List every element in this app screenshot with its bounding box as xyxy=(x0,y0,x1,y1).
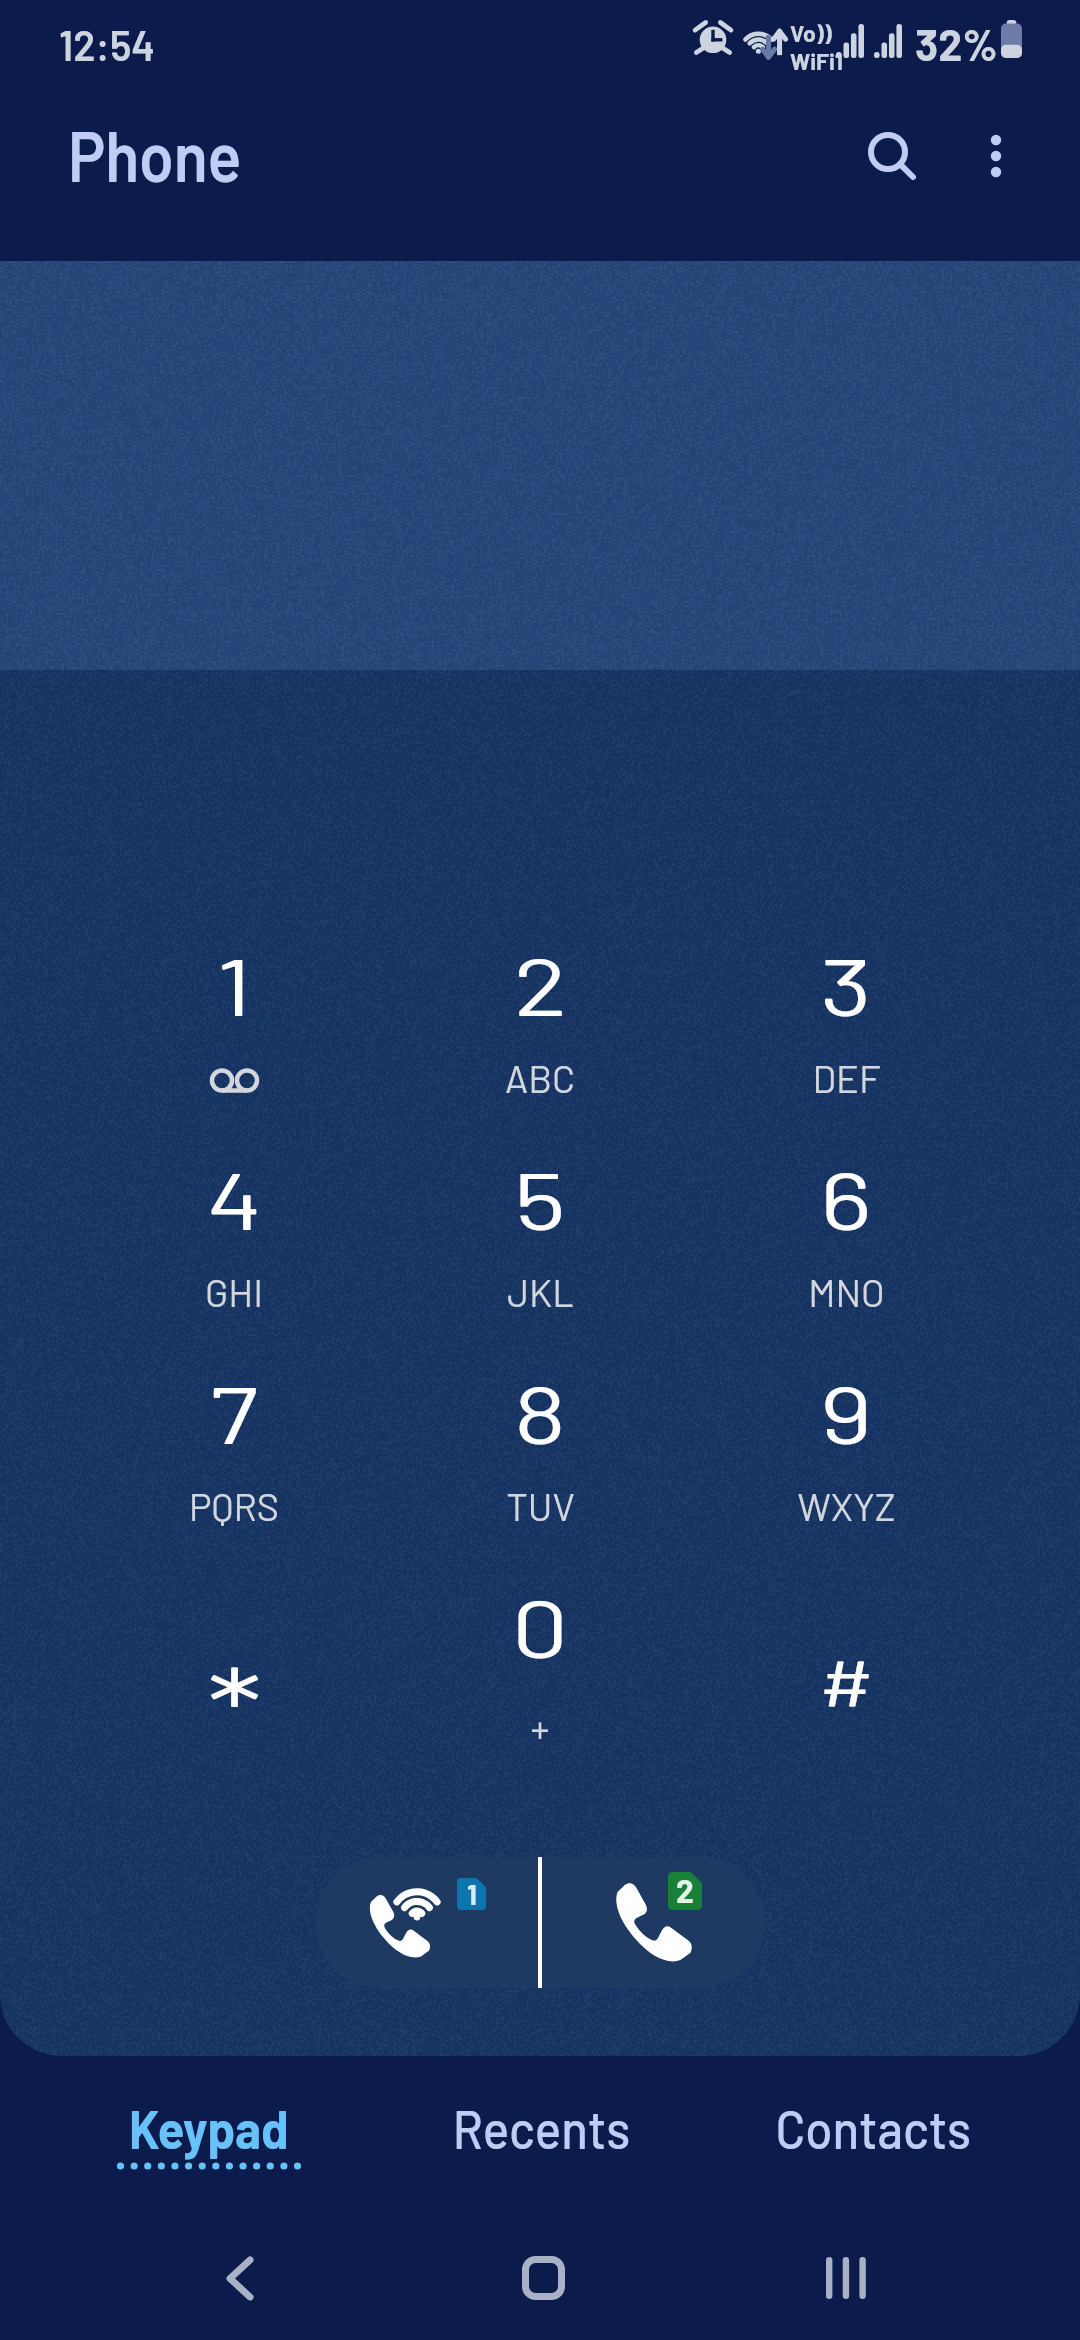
button[interactable]: Recent apps xyxy=(786,2218,906,2338)
staticText: JKL xyxy=(507,1269,574,1315)
staticText: 12:54 xyxy=(59,18,156,70)
button[interactable]: 4 xyxy=(81,1136,387,1350)
staticText: ABC xyxy=(505,1055,575,1101)
staticText: 9 xyxy=(819,1364,872,1460)
staticText: # xyxy=(818,1640,875,1722)
staticText: Vo)) xyxy=(790,19,832,47)
button[interactable]: Home xyxy=(483,2218,603,2338)
staticText: Contacts xyxy=(775,2096,972,2160)
button[interactable]: More options xyxy=(936,96,1056,216)
button[interactable]: 1 xyxy=(81,922,387,1136)
button[interactable]: Search xyxy=(832,96,952,216)
staticText: Keypad xyxy=(129,2096,289,2160)
button[interactable]: 0 xyxy=(387,1564,693,1778)
staticText: 7 xyxy=(210,1364,258,1460)
button[interactable]: 9 xyxy=(693,1350,999,1564)
staticText: 3 xyxy=(819,936,872,1032)
staticText: TUV xyxy=(506,1483,575,1529)
staticText: WiFi1 xyxy=(790,47,843,75)
staticText: * xyxy=(206,1639,263,1773)
staticText: PQRS xyxy=(189,1483,279,1529)
staticText: DEF xyxy=(812,1055,881,1101)
staticText: MNO xyxy=(808,1269,885,1315)
button[interactable]: Call using SIM 2 xyxy=(540,1857,765,1988)
staticText: 32% xyxy=(915,18,998,70)
button[interactable]: 3 xyxy=(693,922,999,1136)
staticText: GHI xyxy=(205,1269,263,1315)
staticText: 5 xyxy=(513,1150,566,1246)
button[interactable]: Recents xyxy=(375,2056,707,2206)
button[interactable]: Call using Wi-Fi calling, SIM 1 xyxy=(315,1857,540,1988)
staticText: WXYZ xyxy=(797,1483,896,1529)
button[interactable]: pound xyxy=(693,1564,999,1778)
button[interactable]: Contacts xyxy=(707,2056,1039,2206)
staticText: 0 xyxy=(511,1578,569,1674)
staticText: 2 xyxy=(513,936,568,1032)
staticText: 1 xyxy=(216,936,252,1032)
button[interactable]: star xyxy=(81,1564,387,1778)
button[interactable]: 7 xyxy=(81,1350,387,1564)
button[interactable]: 6 xyxy=(693,1136,999,1350)
button[interactable]: 8 xyxy=(387,1350,693,1564)
button[interactable]: Back xyxy=(180,2218,300,2338)
button[interactable]: Keypad xyxy=(43,2056,375,2206)
staticText: 6 xyxy=(819,1150,872,1246)
staticText: 4 xyxy=(206,1150,263,1246)
staticText: 1 xyxy=(467,1877,477,1909)
staticText: 8 xyxy=(513,1364,566,1460)
staticText: Phone xyxy=(68,111,242,196)
staticText: Recents xyxy=(453,2096,630,2160)
button[interactable]: 5 xyxy=(387,1136,693,1350)
staticText: 2 xyxy=(676,1871,694,1909)
button[interactable]: 2 xyxy=(387,922,693,1136)
staticText: + xyxy=(530,1705,550,1751)
